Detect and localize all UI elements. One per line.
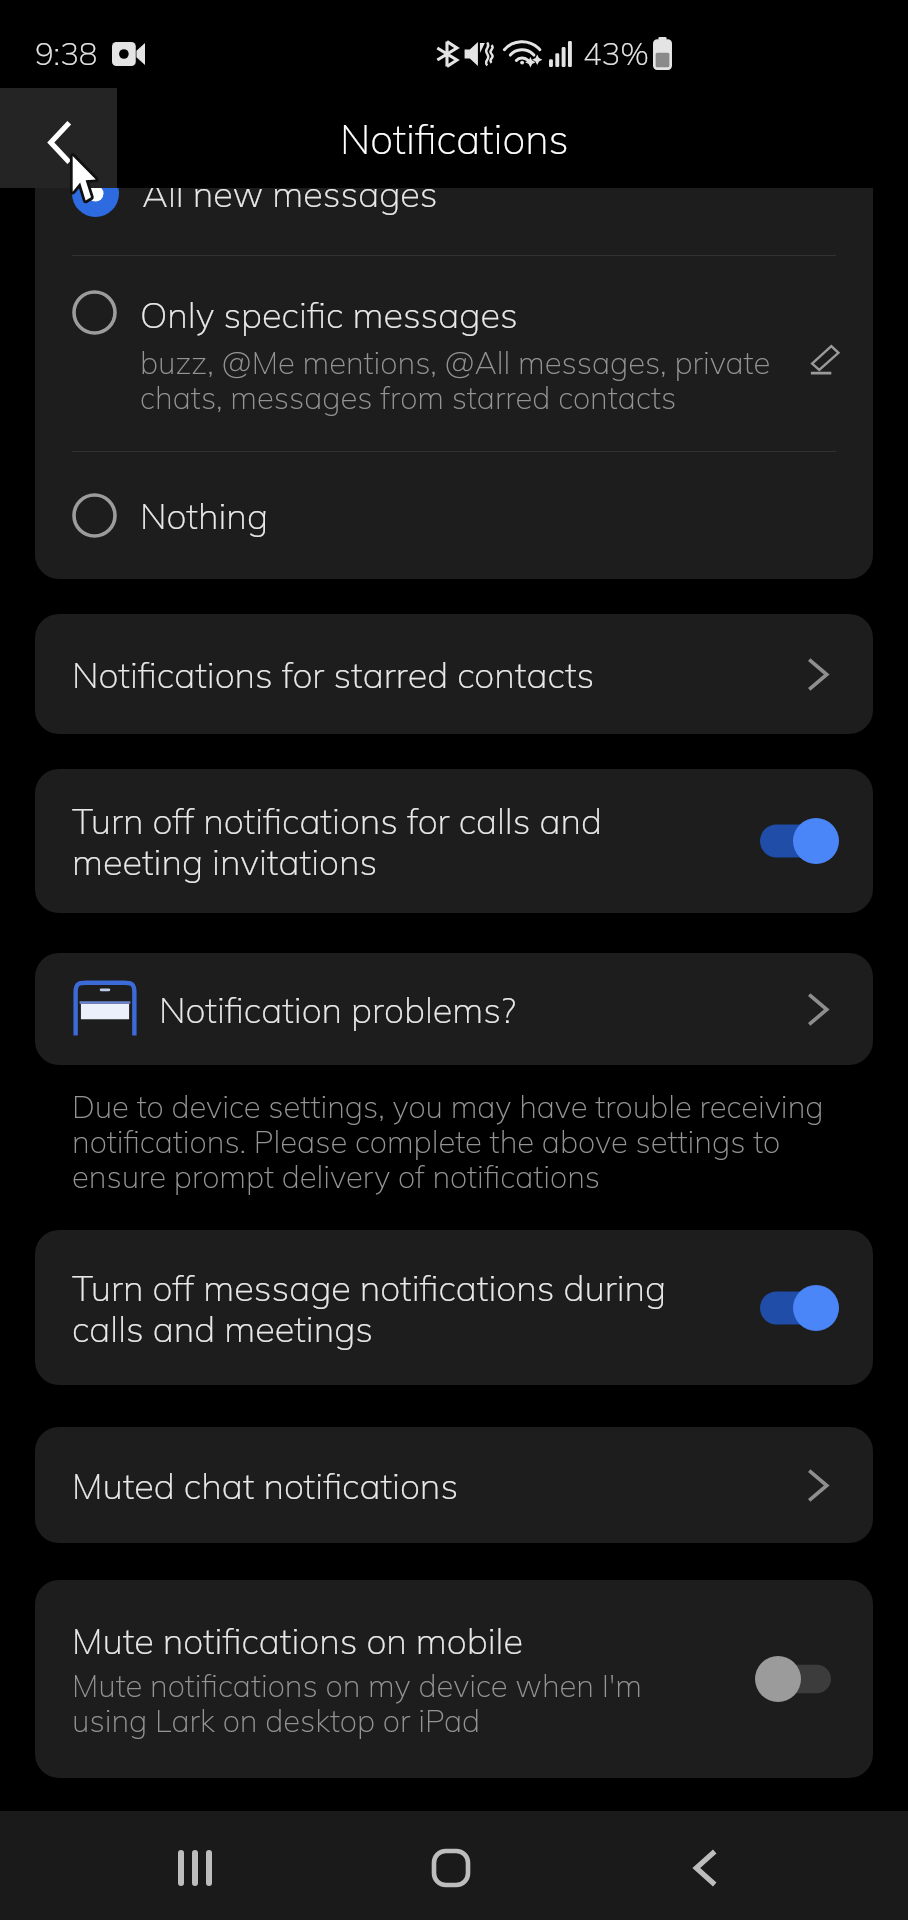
- staticText: Nothing: [140, 493, 269, 538]
- staticText: 9:38: [35, 34, 98, 73]
- button[interactable]: Nothing: [35, 452, 873, 579]
- staticText: All new messages: [142, 188, 438, 216]
- staticText: Due to device settings, you may have tro…: [72, 1087, 846, 1196]
- button[interactable]: Edit: [792, 256, 852, 436]
- button[interactable]: Notification problems?: [35, 953, 873, 1065]
- staticText: Notifications: [340, 113, 569, 164]
- button[interactable]: Notifications for starred contacts: [35, 614, 873, 734]
- button[interactable]: Mute notifications on mobile: [35, 1580, 873, 1778]
- button[interactable]: Back: [0, 88, 117, 188]
- staticText: Mute notifications on my device when I'm…: [72, 1666, 695, 1740]
- staticText: Only specific messages: [140, 292, 518, 337]
- staticText: Notifications for starred contacts: [72, 652, 807, 697]
- staticText: Turn off message notifications during ca…: [72, 1265, 740, 1351]
- button[interactable]: Turn off message notifications during ca…: [35, 1230, 873, 1385]
- button[interactable]: Only specific messages: [35, 256, 873, 451]
- staticText: 43%: [583, 34, 649, 73]
- button[interactable]: All new messages: [35, 188, 873, 255]
- button[interactable]: Recent apps: [120, 1811, 270, 1920]
- staticText: Turn off notifications for calls and mee…: [72, 798, 740, 884]
- button[interactable]: Muted chat notifications: [35, 1427, 873, 1543]
- button[interactable]: Home: [376, 1811, 526, 1920]
- staticText: Mute notifications on mobile: [72, 1618, 523, 1663]
- staticText: Notification problems?: [159, 987, 807, 1032]
- button[interactable]: Back: [630, 1811, 780, 1920]
- staticText: buzz, @Me mentions, @All messages, priva…: [140, 343, 792, 417]
- button[interactable]: Turn off notifications for calls and mee…: [35, 769, 873, 913]
- staticText: Muted chat notifications: [72, 1463, 807, 1508]
